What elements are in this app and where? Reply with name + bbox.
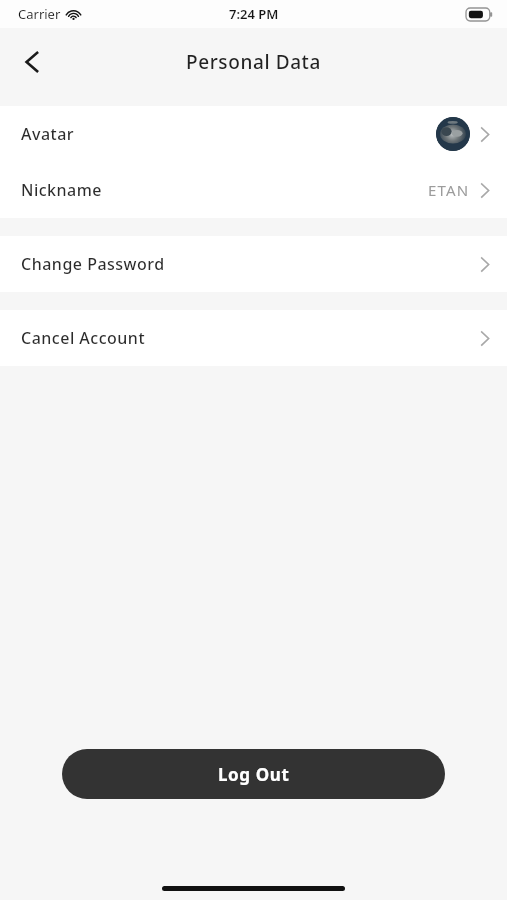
staticText: Avatar xyxy=(21,123,75,145)
button[interactable]: Avatar xyxy=(0,106,507,162)
staticText: Personal Data xyxy=(186,49,321,75)
staticText: ETAN xyxy=(428,180,470,200)
staticText: Change Password xyxy=(21,253,165,275)
staticText: Cancel Account xyxy=(21,327,146,349)
button[interactable]: Nickname xyxy=(0,162,507,218)
staticText: 7:24 PM xyxy=(229,5,279,23)
staticText: Nickname xyxy=(21,179,103,201)
staticText: Log Out xyxy=(218,763,290,786)
button[interactable]: Back xyxy=(8,38,56,86)
button[interactable]: Cancel Account xyxy=(0,310,507,366)
button[interactable]: Change Password xyxy=(0,236,507,292)
staticText: Carrier xyxy=(18,5,61,23)
button[interactable]: Log Out xyxy=(62,749,445,799)
